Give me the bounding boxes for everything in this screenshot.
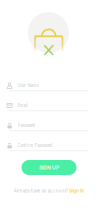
button[interactable]: SIGN UP [21, 160, 76, 175]
staticText: Password [17, 123, 35, 128]
staticText: Already have an account? [14, 188, 68, 193]
button[interactable]: Already have an account? [14, 188, 84, 193]
staticText: Sign In [69, 188, 84, 193]
staticText: Confirm Password [17, 143, 52, 148]
staticText: Email [17, 103, 27, 108]
staticText: User Name [17, 83, 38, 88]
staticText: SIGN UP [39, 164, 59, 171]
